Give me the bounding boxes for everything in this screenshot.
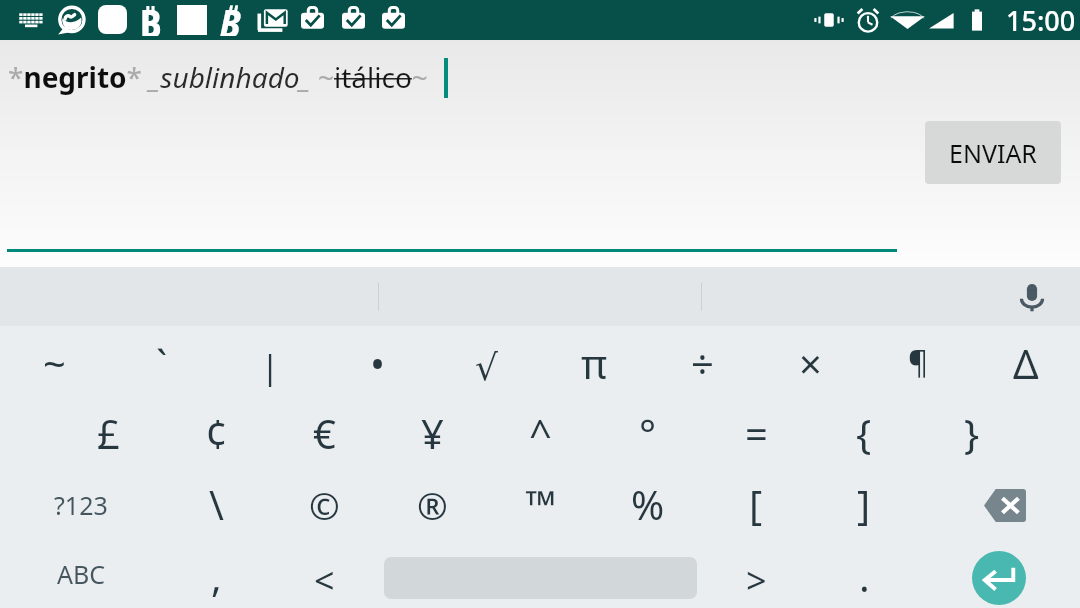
staticText: >: [746, 556, 767, 605]
button[interactable]: π: [540, 328, 648, 398]
button[interactable]: Voice input: [1010, 275, 1054, 319]
staticText: 15:00: [1006, 2, 1076, 39]
staticText: ¶: [908, 340, 929, 382]
staticText: π: [581, 336, 608, 390]
staticText: Δ: [1013, 336, 1039, 390]
button[interactable]: ¥: [378, 398, 486, 468]
staticText: ®: [417, 480, 448, 530]
staticText: ABC: [57, 557, 106, 591]
staticText: ,: [211, 549, 222, 603]
staticText: \: [209, 477, 224, 531]
button[interactable]: .: [810, 543, 918, 608]
button[interactable]: ENVIAR: [925, 121, 1061, 184]
staticText: ©: [309, 480, 340, 530]
button[interactable]: £: [54, 398, 162, 468]
button[interactable]: ×: [756, 328, 864, 398]
staticText: ¥: [421, 406, 444, 460]
button[interactable]: `: [108, 328, 216, 398]
staticText: ~: [43, 336, 66, 390]
button[interactable]: [: [702, 469, 810, 539]
button[interactable]: ABC: [0, 541, 162, 606]
staticText: ?123: [54, 488, 108, 522]
button[interactable]: ™: [486, 469, 594, 539]
button[interactable]: <: [270, 548, 378, 608]
button[interactable]: >: [702, 548, 810, 608]
button[interactable]: Backspace: [950, 470, 1060, 540]
staticText: =: [745, 406, 768, 460]
staticText: `: [156, 336, 168, 390]
staticText: ₿: [139, 0, 162, 36]
staticText: ÷: [691, 336, 714, 390]
staticText: ENVIAR: [949, 136, 1037, 170]
button[interactable]: ®: [378, 470, 486, 540]
button[interactable]: ¢: [162, 398, 270, 468]
staticText: .: [859, 549, 870, 603]
staticText: |: [261, 344, 280, 389]
button[interactable]: ÷: [648, 328, 756, 398]
staticText: ]: [857, 477, 871, 531]
staticText: √: [475, 347, 498, 389]
staticText: *negrito* _sublinhado_ ~itálico~: [8, 58, 428, 96]
staticText: °: [639, 406, 657, 460]
staticText: [: [749, 477, 763, 531]
button[interactable]: %: [594, 469, 702, 539]
button[interactable]: Enter: [972, 551, 1026, 605]
button[interactable]: ©: [270, 470, 378, 540]
button[interactable]: ^: [486, 398, 594, 468]
button[interactable]: ¶: [864, 326, 972, 396]
button[interactable]: =: [702, 398, 810, 468]
button[interactable]: €: [270, 398, 378, 468]
button[interactable]: }: [918, 398, 1026, 468]
staticText: }: [964, 406, 980, 460]
button[interactable]: |: [216, 331, 324, 401]
staticText: <: [314, 556, 335, 605]
button[interactable]: {: [810, 398, 918, 468]
button[interactable]: ?123: [0, 470, 162, 540]
staticText: •: [370, 336, 386, 390]
button[interactable]: \: [162, 469, 270, 539]
button[interactable]: °: [594, 398, 702, 468]
button[interactable]: Message text field: [0, 44, 1080, 254]
staticText: ™: [525, 477, 556, 531]
staticText: ^: [529, 406, 552, 460]
button[interactable]: •: [324, 328, 432, 398]
button[interactable]: ,: [162, 543, 270, 608]
button[interactable]: √: [432, 333, 540, 403]
staticText: ₿: [219, 0, 241, 36]
staticText: %: [631, 477, 665, 531]
staticText: €: [313, 406, 336, 460]
button[interactable]: ~: [0, 328, 108, 398]
staticText: ×: [799, 336, 822, 390]
staticText: ¢: [205, 406, 228, 460]
button[interactable]: ]: [810, 469, 918, 539]
button[interactable]: Δ: [972, 328, 1080, 398]
staticText: £: [97, 406, 120, 460]
staticText: {: [856, 406, 872, 460]
